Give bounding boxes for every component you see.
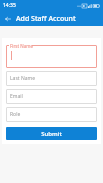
staticText: Add Staff Account [16,14,76,24]
staticText: Email [10,93,23,100]
staticText: Role [10,111,21,118]
staticText: 14:35 [3,2,16,9]
button[interactable]: Back [2,13,13,24]
button[interactable]: First Name [6,42,97,68]
button[interactable]: Role [6,107,97,122]
staticText: First Name [10,43,33,49]
button[interactable]: Submit [6,127,97,140]
staticText: Last Name [10,75,36,82]
button[interactable]: Email [6,89,97,104]
staticText: Submit [41,130,62,138]
button[interactable]: Last Name [6,71,97,86]
